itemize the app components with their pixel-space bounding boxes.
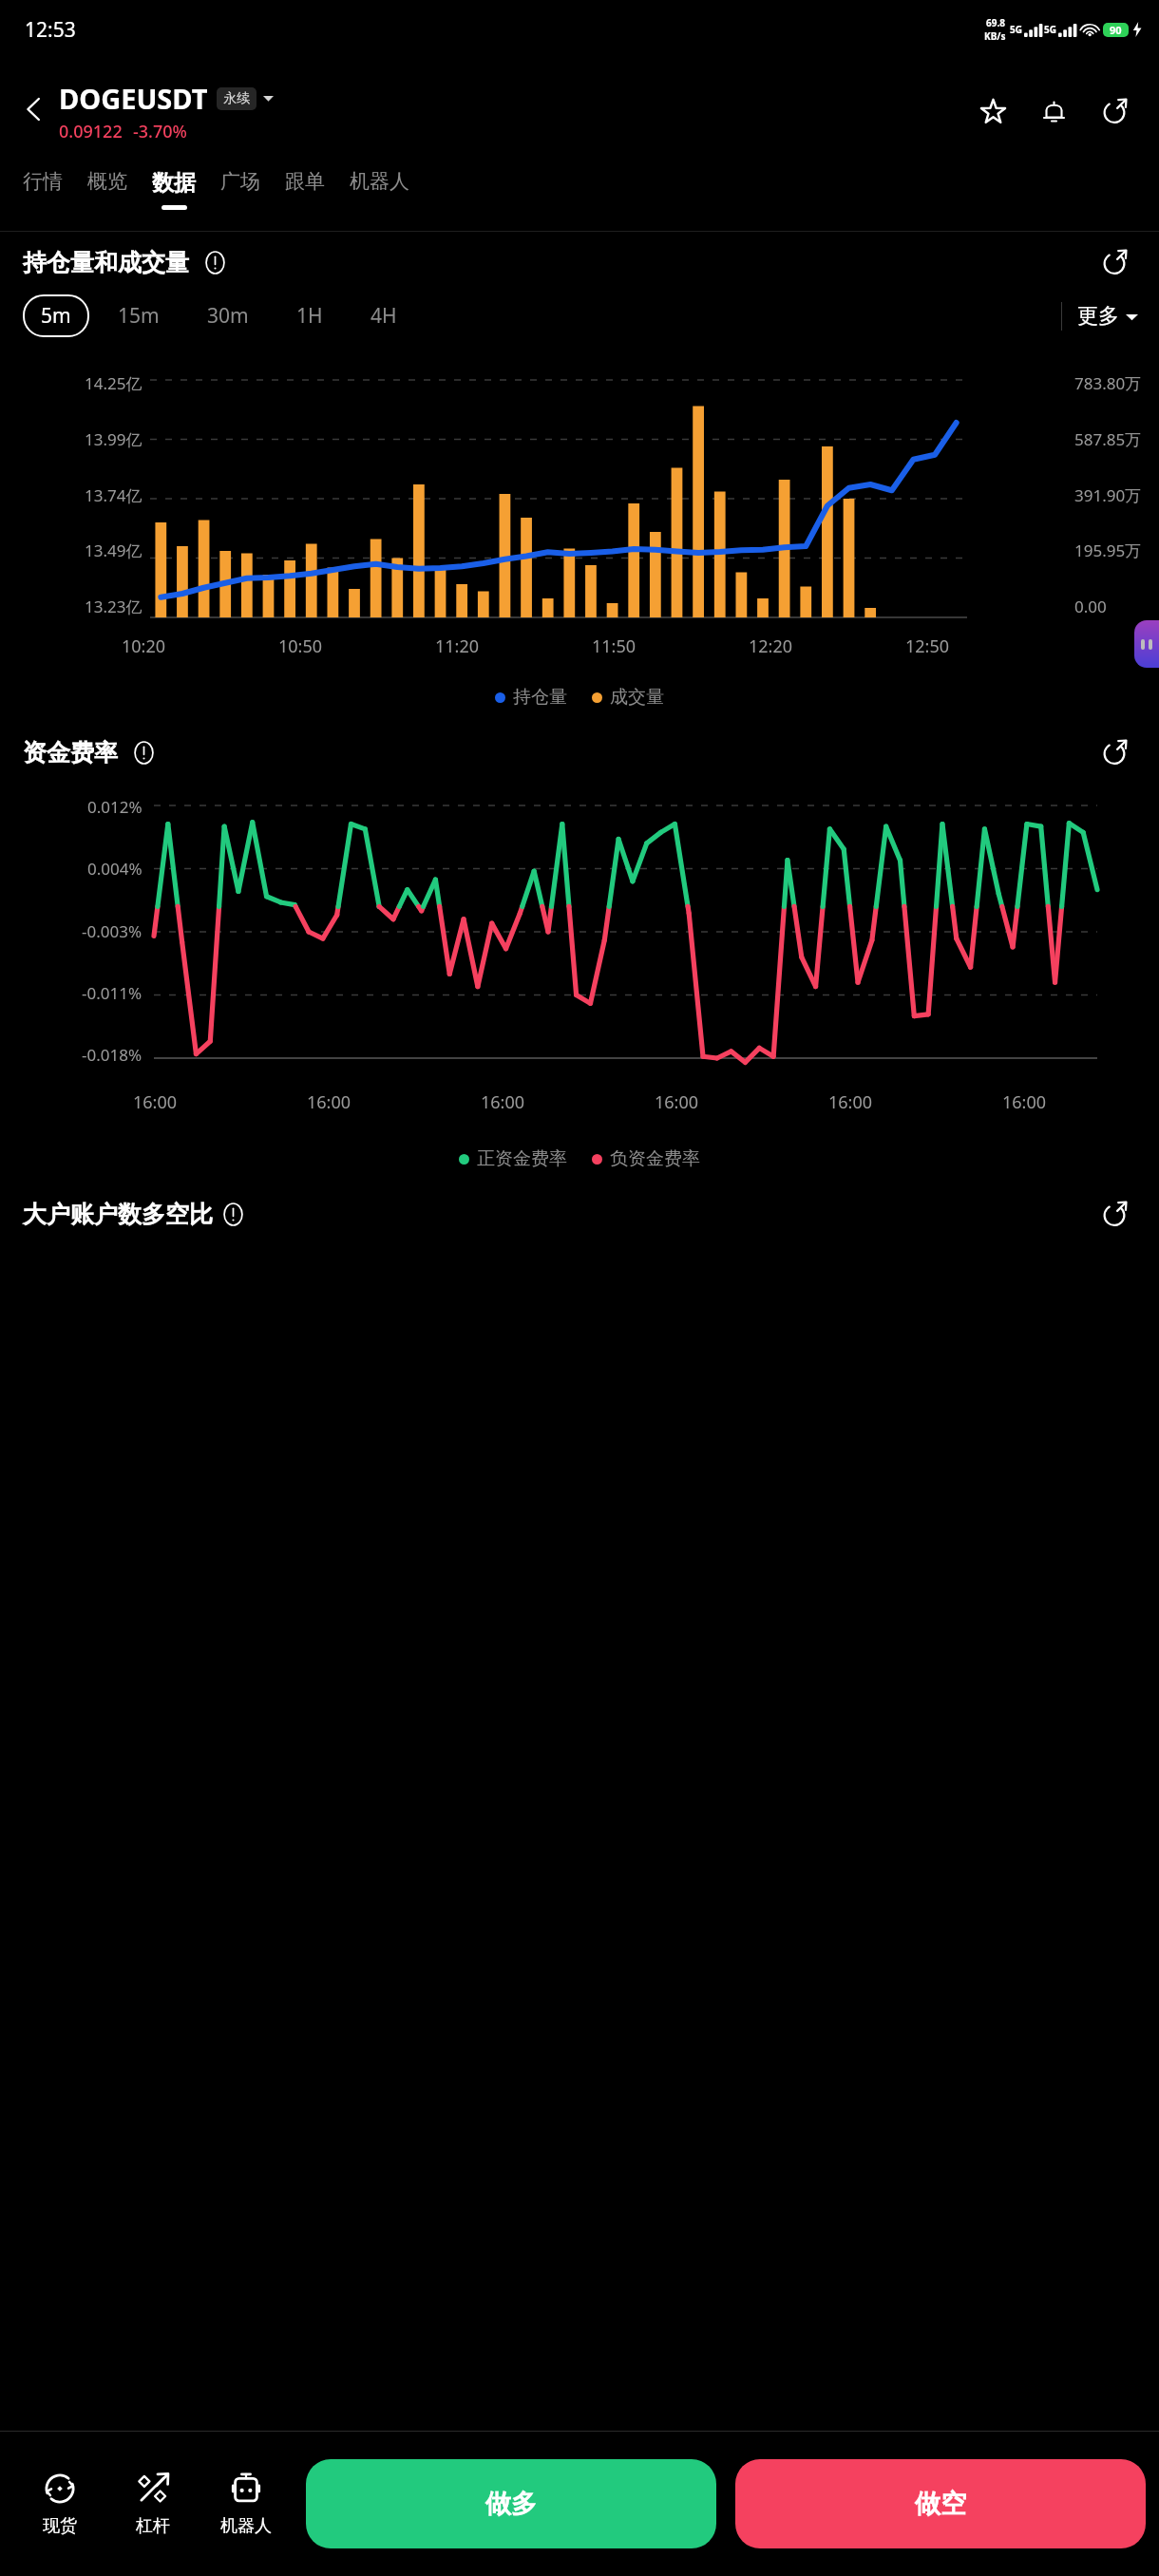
button[interactable]: Info: [199, 246, 231, 278]
staticText: 概览: [87, 169, 127, 194]
button[interactable]: 行情: [23, 160, 63, 194]
button[interactable]: 机器人: [350, 160, 409, 194]
staticText: 391.90万: [1074, 484, 1142, 506]
staticText: 0.09122: [59, 120, 123, 143]
staticText: 持仓量和成交量: [23, 248, 189, 277]
staticText: -0.011%: [82, 982, 142, 1004]
staticText: 5G: [1010, 23, 1022, 36]
staticText: 69.8: [986, 16, 1005, 29]
staticText: DOGEUSDT: [59, 80, 208, 117]
staticText: 5G: [1044, 23, 1056, 36]
staticText: 5m: [41, 302, 71, 330]
staticText: 15m: [118, 302, 160, 330]
staticText: 正资金费率: [477, 1147, 567, 1170]
staticText: 30m: [207, 302, 249, 330]
staticText: 12:50: [905, 635, 950, 658]
staticText: 永续: [223, 90, 250, 107]
staticText: -0.018%: [82, 1044, 142, 1066]
staticText: 广场: [220, 169, 260, 194]
staticText: 783.80万: [1074, 372, 1142, 394]
staticText: 11:50: [592, 635, 636, 658]
staticText: 成交量: [610, 686, 664, 709]
button[interactable]: Expand: [1091, 729, 1138, 776]
button[interactable]: 1H: [283, 293, 336, 339]
staticText: 13.99亿: [85, 428, 142, 450]
staticText: 数据: [152, 169, 196, 197]
button[interactable]: Alerts: [1030, 87, 1077, 135]
staticText: 更多: [1077, 303, 1119, 330]
staticText: 跟单: [285, 169, 325, 194]
staticText: 杠杆: [136, 2515, 170, 2537]
button[interactable]: 做空: [735, 2459, 1146, 2548]
staticText: 10:50: [278, 635, 323, 658]
button[interactable]: 广场: [220, 160, 260, 194]
button[interactable]: Share: [1091, 87, 1138, 135]
staticText: 13.23亿: [85, 596, 142, 617]
button[interactable]: 机器人: [199, 2432, 293, 2576]
button[interactable]: Assistant: [1134, 620, 1159, 668]
staticText: 16:00: [828, 1090, 873, 1114]
staticText: 大户账户数多空比: [23, 1200, 213, 1229]
button[interactable]: 概览: [87, 160, 127, 194]
button[interactable]: Back: [9, 85, 59, 134]
staticText: 16:00: [655, 1090, 699, 1114]
staticText: 0.004%: [87, 858, 142, 880]
staticText: 4H: [370, 302, 397, 330]
button[interactable]: 跟单: [285, 160, 325, 194]
staticText: 16:00: [481, 1090, 525, 1114]
button[interactable]: 4H: [357, 293, 410, 339]
button[interactable]: Info: [127, 736, 160, 768]
staticText: 12:53: [25, 16, 76, 44]
staticText: 16:00: [1002, 1090, 1047, 1114]
staticText: -0.003%: [82, 920, 142, 942]
button[interactable]: Expand: [1091, 1190, 1138, 1238]
staticText: 做空: [915, 2488, 966, 2520]
staticText: 0.00: [1074, 596, 1107, 617]
staticText: 现货: [43, 2515, 77, 2537]
staticText: 13.74亿: [85, 484, 142, 506]
button[interactable]: Expand: [1091, 238, 1138, 286]
staticText: 机器人: [350, 169, 409, 194]
staticText: 10:20: [122, 635, 166, 658]
button[interactable]: 数据: [152, 160, 196, 210]
button[interactable]: Favorite: [969, 87, 1016, 135]
button[interactable]: 5m: [41, 302, 71, 330]
staticText: 行情: [23, 169, 63, 194]
button[interactable]: 更多: [1077, 303, 1138, 330]
staticText: -3.70%: [133, 120, 187, 143]
button[interactable]: 杠杆: [106, 2432, 199, 2576]
staticText: 负资金费率: [610, 1147, 700, 1170]
staticText: 90: [1110, 23, 1122, 37]
staticText: 13.49亿: [85, 540, 142, 561]
staticText: 14.25亿: [85, 372, 142, 394]
staticText: 资金费率: [23, 738, 118, 767]
button[interactable]: 现货: [13, 2432, 106, 2576]
staticText: 机器人: [220, 2515, 272, 2537]
staticText: 12:20: [749, 635, 793, 658]
staticText: 16:00: [133, 1090, 178, 1114]
staticText: KB/s: [984, 29, 1006, 43]
staticText: 1H: [296, 302, 323, 330]
button[interactable]: 30m: [194, 293, 262, 339]
button[interactable]: 做多: [306, 2459, 716, 2548]
staticText: 16:00: [307, 1090, 351, 1114]
staticText: 587.85万: [1074, 428, 1142, 450]
staticText: 11:20: [435, 635, 480, 658]
staticText: 195.95万: [1074, 540, 1142, 561]
staticText: 持仓量: [513, 686, 567, 709]
staticText: 做多: [485, 2488, 537, 2520]
staticText: 0.012%: [87, 796, 142, 818]
button[interactable]: 15m: [104, 293, 173, 339]
